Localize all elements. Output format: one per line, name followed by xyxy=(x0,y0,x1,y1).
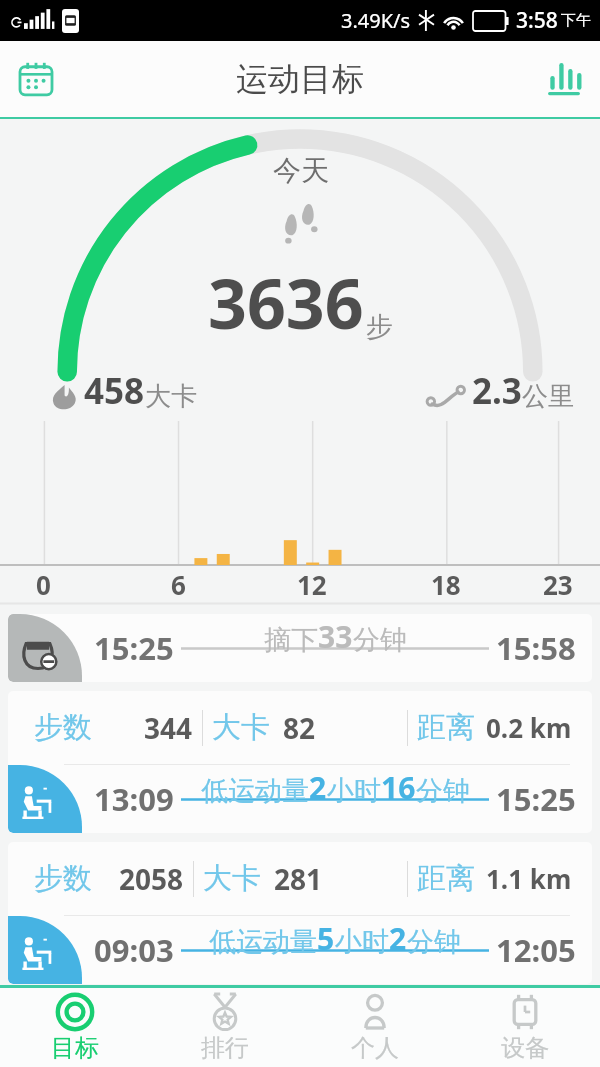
staticText: 12 xyxy=(297,567,327,602)
staticText: 18 xyxy=(431,567,461,602)
button[interactable]: 设备 xyxy=(450,988,600,1067)
button[interactable]: 步数 xyxy=(8,691,592,833)
button[interactable]: 个人 xyxy=(300,988,450,1067)
staticText: 6 xyxy=(171,567,186,602)
staticText: 1.1 km xyxy=(486,861,572,896)
staticText: 281 xyxy=(274,860,323,898)
staticText: 个人 xyxy=(351,1033,399,1063)
staticText: 344 xyxy=(144,709,193,747)
staticText: 2058 xyxy=(119,860,184,898)
button[interactable]: Calendar xyxy=(6,49,66,109)
staticText: 0.2 km xyxy=(486,710,572,745)
staticText: 82 xyxy=(283,709,316,747)
staticText: 设备 xyxy=(501,1033,549,1063)
staticText: 12:05 xyxy=(496,929,576,971)
staticText: 小时 xyxy=(327,774,381,808)
staticText: 23 xyxy=(543,567,573,602)
staticText: 09:03 xyxy=(94,929,174,971)
staticText: 15:58 xyxy=(496,627,576,669)
staticText: 分钟 xyxy=(353,623,407,657)
staticText: 今天 xyxy=(273,153,329,188)
staticText: 15:25 xyxy=(94,627,174,669)
staticText: 5 xyxy=(317,918,335,959)
staticText: 2 xyxy=(309,767,327,808)
staticText: 3.49K/s xyxy=(341,7,411,34)
staticText: 距离 xyxy=(417,860,475,897)
staticText: 分钟 xyxy=(416,774,470,808)
staticText: 大卡 xyxy=(145,380,197,413)
staticText: 步数 xyxy=(34,860,92,897)
staticText: 目标 xyxy=(51,1033,99,1063)
button[interactable]: 15:25 xyxy=(8,614,592,682)
staticText: 3636 xyxy=(208,256,364,349)
staticText: 0 xyxy=(36,567,51,602)
staticText: 分钟 xyxy=(407,925,461,959)
staticText: 排行 xyxy=(201,1033,249,1063)
staticText: 下午 xyxy=(561,11,591,30)
staticText: 低运动量 xyxy=(209,925,317,959)
staticText: 33 xyxy=(318,616,353,657)
staticText: 运动目标 xyxy=(236,59,364,99)
staticText: 大卡 xyxy=(203,860,261,897)
staticText: 15:25 xyxy=(496,778,576,820)
staticText: 距离 xyxy=(417,709,475,746)
staticText: 步数 xyxy=(34,709,92,746)
staticText: 2 xyxy=(389,918,407,959)
staticText: 458 xyxy=(84,367,145,415)
staticText: 3:58 xyxy=(516,6,558,35)
button[interactable]: 步数 xyxy=(8,842,592,984)
button[interactable]: 排行 xyxy=(150,988,300,1067)
staticText: 2.3 xyxy=(472,367,522,415)
staticText: 低运动量 xyxy=(201,774,309,808)
staticText: 步 xyxy=(366,310,393,344)
staticText: 公里 xyxy=(522,380,574,413)
staticText: 小时 xyxy=(335,925,389,959)
button[interactable]: Statistics xyxy=(534,49,594,109)
staticText: 16 xyxy=(381,767,416,808)
staticText: 摘下 xyxy=(264,623,318,657)
staticText: 大卡 xyxy=(212,709,270,746)
button[interactable]: 目标 xyxy=(0,988,150,1067)
staticText: 13:09 xyxy=(94,778,174,820)
